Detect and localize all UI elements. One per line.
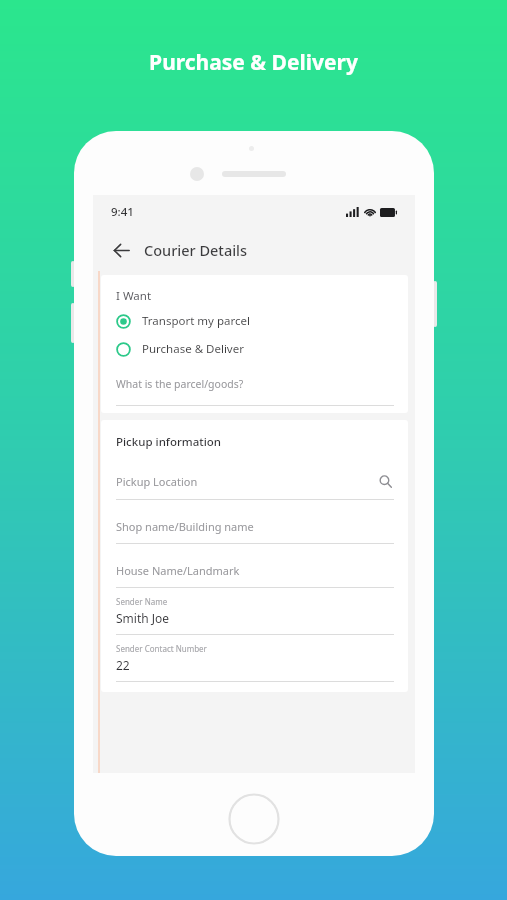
staticText: Pickup Location	[116, 474, 198, 489]
staticText: Sender Name	[116, 596, 168, 607]
staticText: 22	[116, 657, 130, 673]
button[interactable]: Shop name/Building name	[116, 519, 394, 544]
staticText: Purchase & Delivery	[149, 48, 358, 77]
button[interactable]: Purchase & Deliver	[116, 341, 394, 357]
staticText: Purchase & Deliver	[142, 341, 244, 357]
button[interactable]: Pickup Location	[116, 472, 394, 500]
button[interactable]: Sender Contact Number	[116, 643, 394, 682]
button[interactable]: House Name/Landmark	[116, 563, 394, 588]
staticText: Shop name/Building name	[116, 519, 254, 534]
staticText: 9:41	[111, 204, 134, 220]
staticText: Pickup information	[116, 434, 222, 450]
button[interactable]: Back	[107, 236, 135, 264]
staticText: Transport my parcel	[142, 313, 250, 329]
button[interactable]: Search	[376, 472, 394, 490]
staticText: What is the parcel/goods?	[116, 377, 244, 391]
staticText: Sender Contact Number	[116, 643, 207, 654]
button[interactable]: Transport my parcel	[116, 313, 394, 329]
staticText: Smith Joe	[116, 610, 170, 626]
staticText: I Want	[116, 288, 152, 304]
button[interactable]: Sender Name	[116, 596, 394, 635]
staticText: Courier Details	[144, 240, 248, 260]
staticText: House Name/Landmark	[116, 563, 240, 578]
